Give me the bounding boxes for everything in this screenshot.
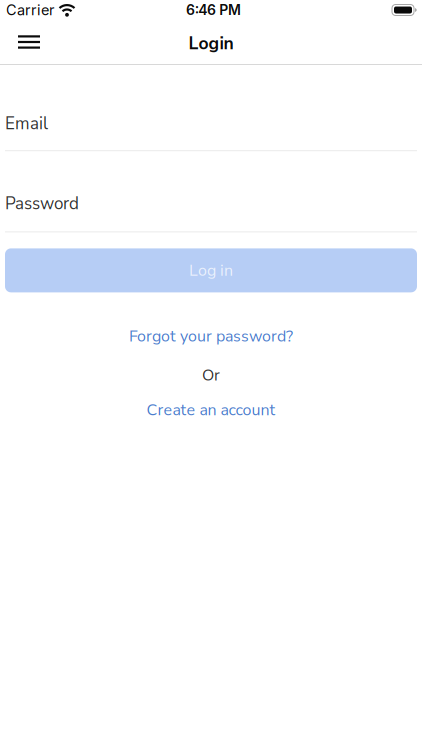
staticText: 6:46 PM (186, 1, 241, 18)
button[interactable]: Forgot your password? (129, 325, 293, 347)
button[interactable]: Menu (0, 21, 40, 63)
button[interactable]: Create an account (146, 399, 275, 421)
staticText: Log in (189, 259, 233, 281)
staticText: Create an account (146, 399, 275, 421)
staticText: Or (202, 364, 220, 386)
staticText: Carrier (6, 1, 54, 19)
button[interactable]: Log in (5, 248, 417, 292)
staticText: Forgot your password? (129, 325, 293, 347)
staticText: Password (5, 192, 79, 215)
staticText: Email (5, 112, 48, 135)
staticText: Login (188, 32, 233, 55)
